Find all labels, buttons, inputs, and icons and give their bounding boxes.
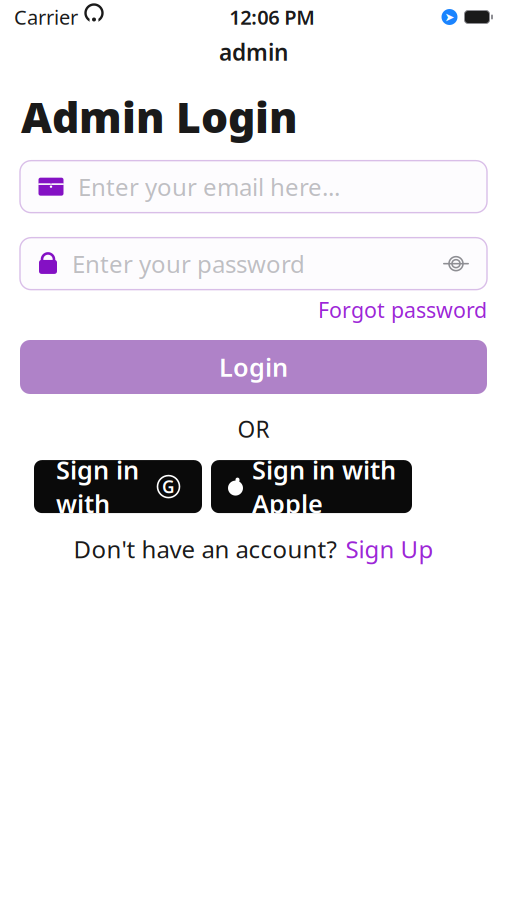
button[interactable]: Forgot password (318, 296, 487, 324)
button[interactable]: Sign in with Apple (211, 460, 412, 513)
staticText: Carrier (14, 4, 78, 30)
staticText: Admin Login (21, 88, 298, 145)
button[interactable]: Sign Up (345, 533, 433, 565)
staticText: Don't have an account? (73, 533, 336, 565)
staticText: Login (219, 350, 288, 384)
staticText: Enter your email here... (78, 171, 340, 203)
staticText: 12:06 PM (229, 4, 315, 30)
staticText: OR (237, 414, 269, 444)
staticText: ➤ (444, 10, 454, 24)
button[interactable]: Show password (441, 250, 471, 278)
staticText: G (162, 475, 175, 498)
staticText: Sign in with (56, 453, 139, 520)
button[interactable]: Sign in with (34, 460, 202, 513)
staticText: Forgot password (318, 296, 487, 324)
staticText: Sign in with Apple (252, 453, 396, 520)
staticText: Sign Up (345, 533, 433, 565)
staticText: Enter your password (72, 248, 305, 280)
button[interactable]: Login (20, 340, 487, 394)
staticText: admin (219, 37, 288, 67)
